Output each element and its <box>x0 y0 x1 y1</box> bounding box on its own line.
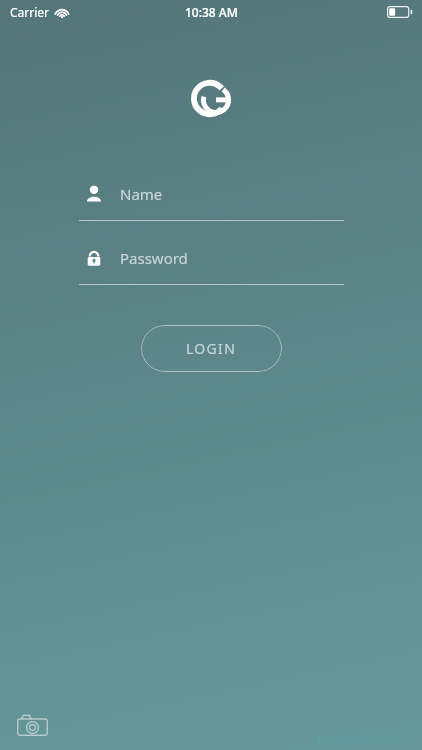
staticText: Carrier <box>10 4 50 20</box>
button[interactable]: LOGIN <box>141 325 282 372</box>
staticText: LOGIN <box>186 339 237 358</box>
button[interactable]: Name <box>79 177 344 221</box>
staticText: 10:38 AM <box>185 4 238 20</box>
staticText: Password <box>120 248 188 268</box>
staticText: Name <box>120 184 163 204</box>
button[interactable]: Password <box>79 241 344 285</box>
button[interactable]: Camera <box>11 707 53 743</box>
staticText: Jan 29 2020 13:25:12 <box>318 732 415 746</box>
